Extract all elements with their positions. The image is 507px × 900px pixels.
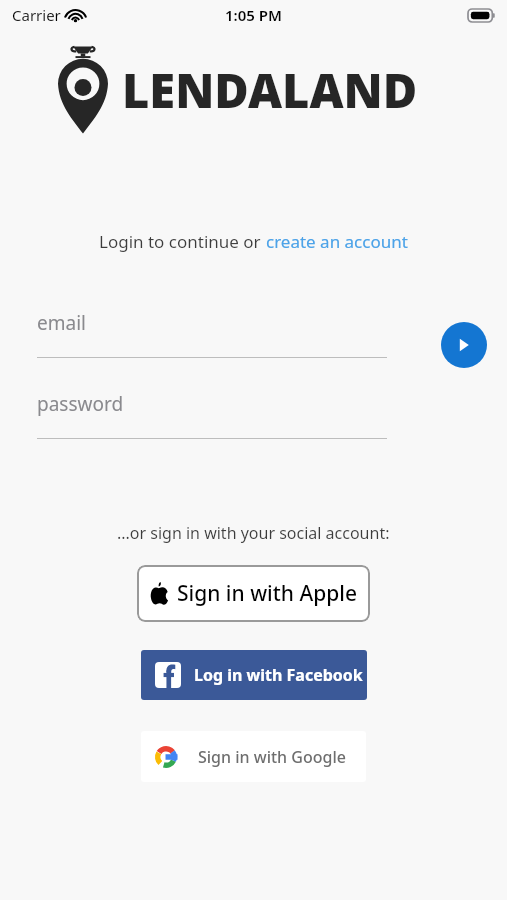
staticText: Carrier <box>12 5 61 25</box>
button[interactable]: email <box>37 310 387 358</box>
staticText: Sign in with Google <box>198 746 346 768</box>
button[interactable]: Log in with Facebook <box>141 650 367 700</box>
button[interactable]: Sign in with Apple <box>137 565 370 622</box>
button[interactable]: create an account <box>266 230 408 253</box>
staticText: create an account <box>266 230 408 253</box>
staticText: LENDALAND <box>122 58 418 122</box>
staticText: 1:05 PM <box>225 5 282 25</box>
button[interactable]: Sign in with Google <box>141 731 366 782</box>
staticText: ...or sign in with your social account: <box>117 522 390 544</box>
staticText: Login to continue or <box>99 230 266 253</box>
staticText: email <box>37 310 86 336</box>
staticText: password <box>37 391 124 417</box>
button[interactable]: Submit <box>441 322 487 368</box>
staticText: Log in with Facebook <box>194 664 363 686</box>
staticText: Sign in with Apple <box>177 579 357 608</box>
button[interactable]: password <box>37 391 387 439</box>
